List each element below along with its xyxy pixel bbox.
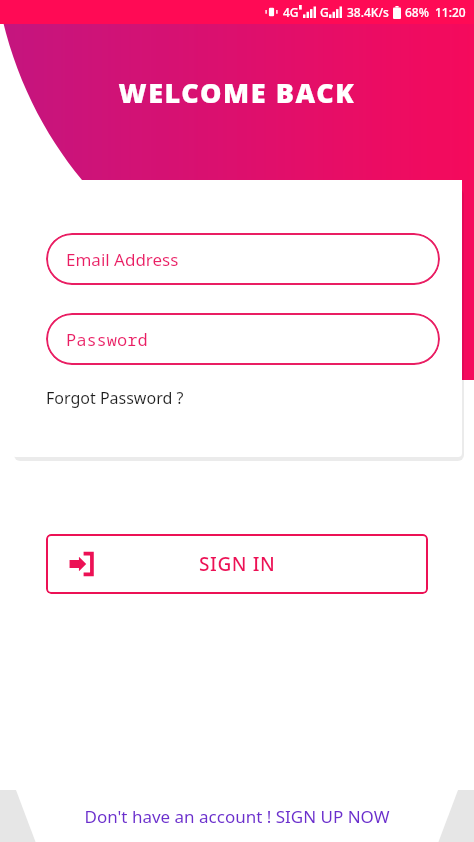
staticText: G bbox=[320, 4, 329, 20]
button[interactable]: Don't have an account ! SIGN UP NOW bbox=[0, 790, 474, 842]
button[interactable]: Email Address bbox=[46, 233, 440, 285]
staticText: Don't have an account ! SIGN UP NOW bbox=[84, 805, 390, 828]
staticText: 38.4K/s bbox=[347, 4, 389, 20]
staticText: Password bbox=[66, 328, 148, 351]
staticText: 4G bbox=[283, 4, 299, 20]
button[interactable]: Password bbox=[46, 313, 440, 365]
staticText: WELCOME BACK bbox=[118, 74, 356, 111]
button[interactable]: SIGN IN bbox=[46, 534, 428, 594]
staticText: 68% bbox=[405, 4, 429, 20]
staticText: Email Address bbox=[66, 248, 179, 271]
staticText: SIGN IN bbox=[199, 551, 276, 577]
staticText: 11:20 bbox=[435, 4, 466, 20]
staticText: Forgot Password ? bbox=[46, 387, 184, 409]
button[interactable]: Forgot Password ? bbox=[46, 383, 184, 413]
